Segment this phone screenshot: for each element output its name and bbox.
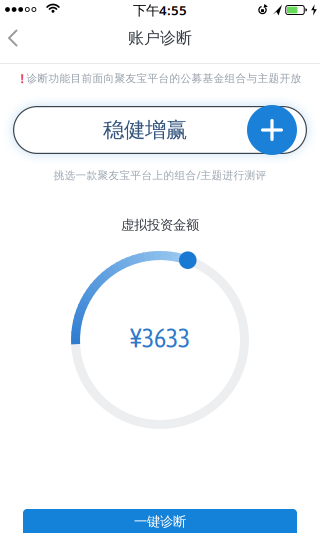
staticText: 挑选一款聚友宝平台上的组合/主题进行测评 [53, 168, 266, 182]
staticText: ! [20, 70, 23, 86]
staticText: 稳健增赢 [103, 117, 187, 143]
button[interactable]: 稳健增赢 [13, 106, 307, 154]
staticText: 下午4:55 [133, 1, 187, 19]
button[interactable]: 一键诊断 [23, 509, 297, 533]
staticText: ¥3633 [130, 323, 190, 353]
staticText: 虚拟投资金额 [121, 217, 199, 233]
button[interactable]: Back [1, 27, 25, 49]
staticText: 一键诊断 [134, 513, 186, 530]
staticText: 诊断功能目前面向聚友宝平台的公募基金组合与主题开放 [26, 72, 301, 85]
staticText: 账户诊断 [128, 28, 192, 48]
